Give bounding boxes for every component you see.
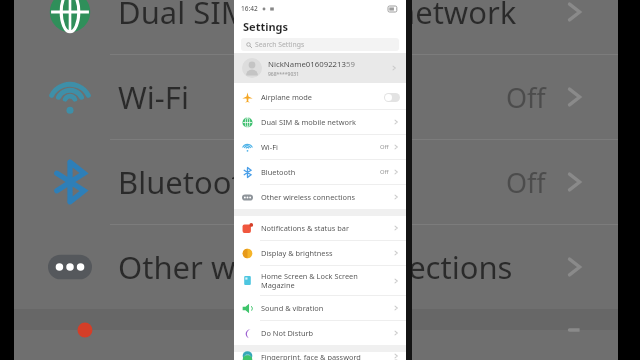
staticText: 16:42 [241, 4, 258, 13]
staticText: 59 [346, 59, 355, 70]
button[interactable]: Sound & vibration [234, 296, 406, 320]
staticText: Display & brightness [261, 248, 333, 258]
staticText: Home Screen & Lock Screen Magazine [261, 271, 358, 290]
staticText: Off [506, 164, 546, 201]
button[interactable]: Wi-Fi [14, 55, 618, 139]
button[interactable]: Display & brightness [234, 241, 406, 265]
staticText: Bluetooth [261, 167, 296, 177]
staticText: Wi-Fi [118, 76, 189, 118]
staticText: Sound & vibration [261, 303, 324, 313]
staticText: Bluetooth [118, 161, 262, 203]
staticText: Airplane mode [261, 92, 313, 102]
button[interactable]: Bluetooth [234, 160, 406, 184]
staticText: Do Not Disturb [261, 328, 314, 338]
staticText: Wi-Fi [261, 142, 278, 152]
button[interactable]: Other wireless connections [234, 185, 406, 209]
button[interactable]: Airplane mode [234, 85, 406, 109]
button[interactable]: Airplane mode toggle [384, 93, 400, 102]
staticText: Notifications & status bar [261, 223, 350, 233]
button[interactable]: Do Not Disturb [234, 321, 406, 345]
button[interactable]: Home Screen & Lock Screen Magazine [234, 266, 406, 295]
staticText: Other wireless connections [118, 246, 513, 288]
staticText: Dual SIM & mobile network [261, 117, 356, 127]
staticText: Off [380, 168, 389, 176]
staticText: Off [506, 79, 546, 116]
staticText: Search Settings [255, 40, 305, 49]
button[interactable]: Wi-Fi [234, 135, 406, 159]
button[interactable]: Fingerprint, face & password [234, 352, 406, 360]
staticText: Fingerprint, face & password [261, 352, 361, 360]
button[interactable]: Search Settings [241, 38, 399, 51]
staticText: Dual SIM & mobile network [118, 0, 517, 33]
staticText: 968****9031 [268, 71, 300, 78]
button[interactable]: Dual SIM & mobile network [14, 0, 618, 54]
staticText: Settings [243, 19, 289, 34]
button[interactable]: Dual SIM & mobile network [234, 110, 406, 134]
button[interactable]: Notifications & status bar [234, 216, 406, 240]
button[interactable]: Other wireless connections [14, 225, 618, 309]
button[interactable]: NickName016092213 [234, 53, 406, 83]
staticText: Other wireless connections [261, 192, 356, 202]
staticText: NickName016092213 [268, 59, 346, 70]
button[interactable]: Bluetooth [14, 140, 618, 224]
staticText: Off [380, 143, 389, 151]
